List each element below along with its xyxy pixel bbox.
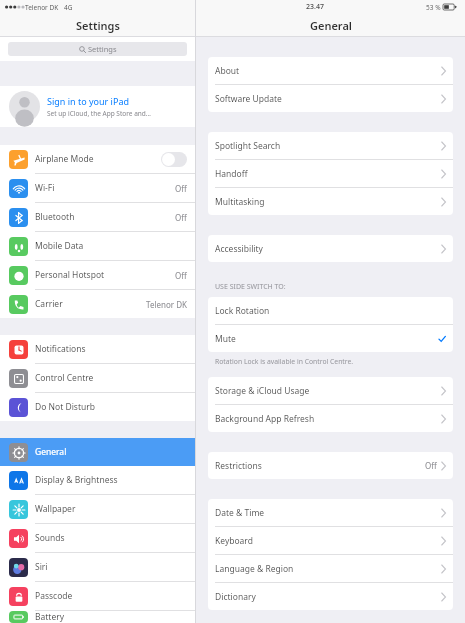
- staticText: Settings: [88, 44, 117, 54]
- staticText: Lock Rotation: [215, 305, 270, 317]
- button[interactable]: Storage & iCloud Usage: [208, 377, 453, 404]
- button[interactable]: Background App Refresh: [208, 405, 453, 432]
- button[interactable]: Notifications: [0, 335, 195, 363]
- button[interactable]: Airplane Mode: [0, 145, 195, 173]
- button[interactable]: Bluetooth: [0, 203, 195, 231]
- button[interactable]: Control Centre: [0, 364, 195, 392]
- button[interactable]: Spotlight Search: [208, 132, 453, 159]
- staticText: 23.47: [306, 2, 324, 12]
- staticText: 4G: [64, 3, 73, 12]
- staticText: Sounds: [35, 532, 65, 544]
- button[interactable]: Display & Brightness: [0, 466, 195, 494]
- button[interactable]: Software Update: [208, 85, 453, 112]
- staticText: Set up iCloud, the App Store and…: [47, 109, 151, 118]
- staticText: Telenor DK: [25, 3, 59, 12]
- button[interactable]: Battery: [0, 611, 195, 623]
- button[interactable]: Dictionary: [208, 583, 453, 610]
- staticText: Spotlight Search: [215, 140, 281, 152]
- staticText: Rotation Lock is available in Control Ce…: [215, 357, 354, 366]
- staticText: About: [215, 65, 240, 77]
- button[interactable]: Accessibility: [208, 235, 453, 262]
- staticText: Storage & iCloud Usage: [215, 385, 310, 397]
- button[interactable]: Lock Rotation: [208, 297, 453, 324]
- staticText: General: [35, 446, 67, 458]
- staticText: General: [310, 18, 352, 33]
- staticText: Bluetooth: [35, 211, 75, 223]
- button[interactable]: Passcode: [0, 582, 195, 610]
- staticText: Display & Brightness: [35, 474, 118, 486]
- staticText: Notifications: [35, 343, 86, 355]
- staticText: Off: [425, 460, 437, 471]
- staticText: USE SIDE SWITCH TO:: [215, 282, 286, 292]
- staticText: Mobile Data: [35, 240, 84, 252]
- staticText: Battery: [35, 611, 65, 623]
- button[interactable]: Do Not Disturb: [0, 393, 195, 421]
- staticText: Mute: [215, 333, 236, 345]
- button[interactable]: Sounds: [0, 524, 195, 552]
- button[interactable]: Restrictions: [208, 452, 453, 479]
- button[interactable]: Date & Time: [208, 499, 453, 526]
- staticText: Siri: [35, 561, 48, 573]
- staticText: Off: [175, 270, 187, 281]
- staticText: Do Not Disturb: [35, 401, 95, 413]
- button[interactable]: Mobile Data: [0, 232, 195, 260]
- button[interactable]: Siri: [0, 553, 195, 581]
- staticText: Sign in to your iPad: [47, 95, 129, 107]
- staticText: Control Centre: [35, 372, 94, 384]
- staticText: Wallpaper: [35, 503, 76, 515]
- staticText: Carrier: [35, 298, 63, 310]
- staticText: Airplane Mode: [35, 153, 94, 165]
- staticText: Passcode: [35, 590, 73, 602]
- staticText: Settings: [76, 18, 120, 33]
- staticText: Personal Hotspot: [35, 269, 105, 281]
- staticText: Off: [175, 183, 187, 194]
- staticText: Handoff: [215, 168, 248, 180]
- staticText: Language & Region: [215, 563, 294, 575]
- button[interactable]: Wi-Fi: [0, 174, 195, 202]
- button[interactable]: Personal Hotspot: [0, 261, 195, 289]
- staticText: Off: [175, 212, 187, 223]
- staticText: Telenor DK: [146, 299, 187, 310]
- button[interactable]: General: [0, 438, 195, 466]
- staticText: Keyboard: [215, 535, 253, 547]
- staticText: Multitasking: [215, 196, 265, 208]
- button[interactable]: Multitasking: [208, 188, 453, 215]
- button[interactable]: About: [208, 57, 453, 84]
- button[interactable]: Mute: [208, 325, 453, 352]
- staticText: Dictionary: [215, 591, 256, 603]
- button[interactable]: Wallpaper: [0, 495, 195, 523]
- staticText: 53 %: [426, 3, 441, 12]
- staticText: Accessibility: [215, 243, 263, 255]
- staticText: Software Update: [215, 93, 282, 105]
- button[interactable]: Language & Region: [208, 555, 453, 582]
- button[interactable]: Settings: [8, 42, 187, 56]
- button[interactable]: Keyboard: [208, 527, 453, 554]
- staticText: Background App Refresh: [215, 413, 315, 425]
- button[interactable]: Handoff: [208, 160, 453, 187]
- button[interactable]: Sign in to your iPad: [0, 86, 195, 127]
- staticText: Restrictions: [215, 460, 262, 472]
- button[interactable]: Carrier: [0, 290, 195, 318]
- staticText: Date & Time: [215, 507, 265, 519]
- staticText: Wi-Fi: [35, 182, 55, 194]
